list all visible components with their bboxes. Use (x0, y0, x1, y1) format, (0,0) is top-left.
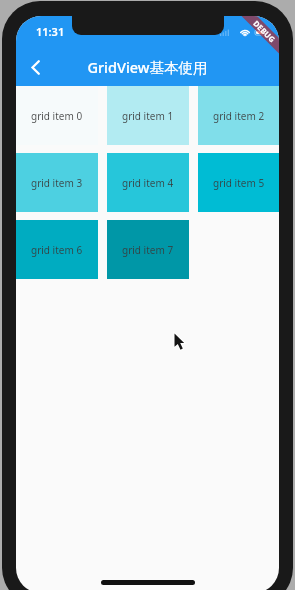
staticText: grid item 7 (122, 243, 174, 257)
button[interactable]: grid item 6 (16, 220, 98, 279)
button[interactable]: grid item 0 (16, 86, 98, 145)
staticText: grid item 2 (213, 109, 265, 123)
staticText: GridView基本使用 (87, 57, 208, 77)
staticText: grid item 1 (122, 109, 174, 123)
button[interactable]: Back (16, 48, 54, 86)
button[interactable]: grid item 7 (107, 220, 189, 279)
staticText: grid item 4 (122, 176, 174, 190)
staticText: grid item 3 (31, 176, 83, 190)
staticText: grid item 6 (31, 243, 83, 257)
staticText: 11:31 (36, 24, 65, 39)
button[interactable]: grid item 5 (198, 153, 279, 212)
staticText: grid item 0 (31, 109, 83, 123)
button[interactable]: grid item 4 (107, 153, 189, 212)
button[interactable]: grid item 3 (16, 153, 98, 212)
staticText: grid item 5 (213, 176, 265, 190)
button[interactable]: grid item 2 (198, 86, 279, 145)
button[interactable]: grid item 1 (107, 86, 189, 145)
staticText: DEBUG (251, 18, 277, 44)
